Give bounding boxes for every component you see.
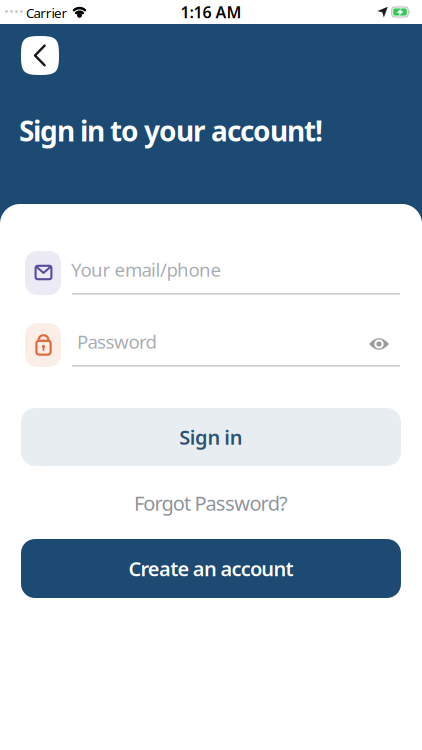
staticText: Carrier (26, 4, 68, 22)
staticText: 1:16 AM (180, 1, 241, 23)
button[interactable] (0, 0, 422, 750)
staticText: Forgot Password? (134, 490, 288, 516)
button[interactable] (25, 321, 355, 367)
staticText: Password (77, 329, 156, 354)
staticText: Your email/phone (71, 257, 221, 282)
button[interactable]: Create an account (21, 539, 401, 598)
button[interactable] (25, 249, 401, 295)
button[interactable]: Forgot Password? (0, 491, 422, 515)
staticText: Sign in to your account! (19, 112, 323, 149)
button[interactable]: Sign in (21, 408, 401, 466)
staticText: Create an account (128, 555, 294, 582)
button[interactable] (21, 36, 59, 75)
staticText: Sign in (179, 424, 243, 450)
